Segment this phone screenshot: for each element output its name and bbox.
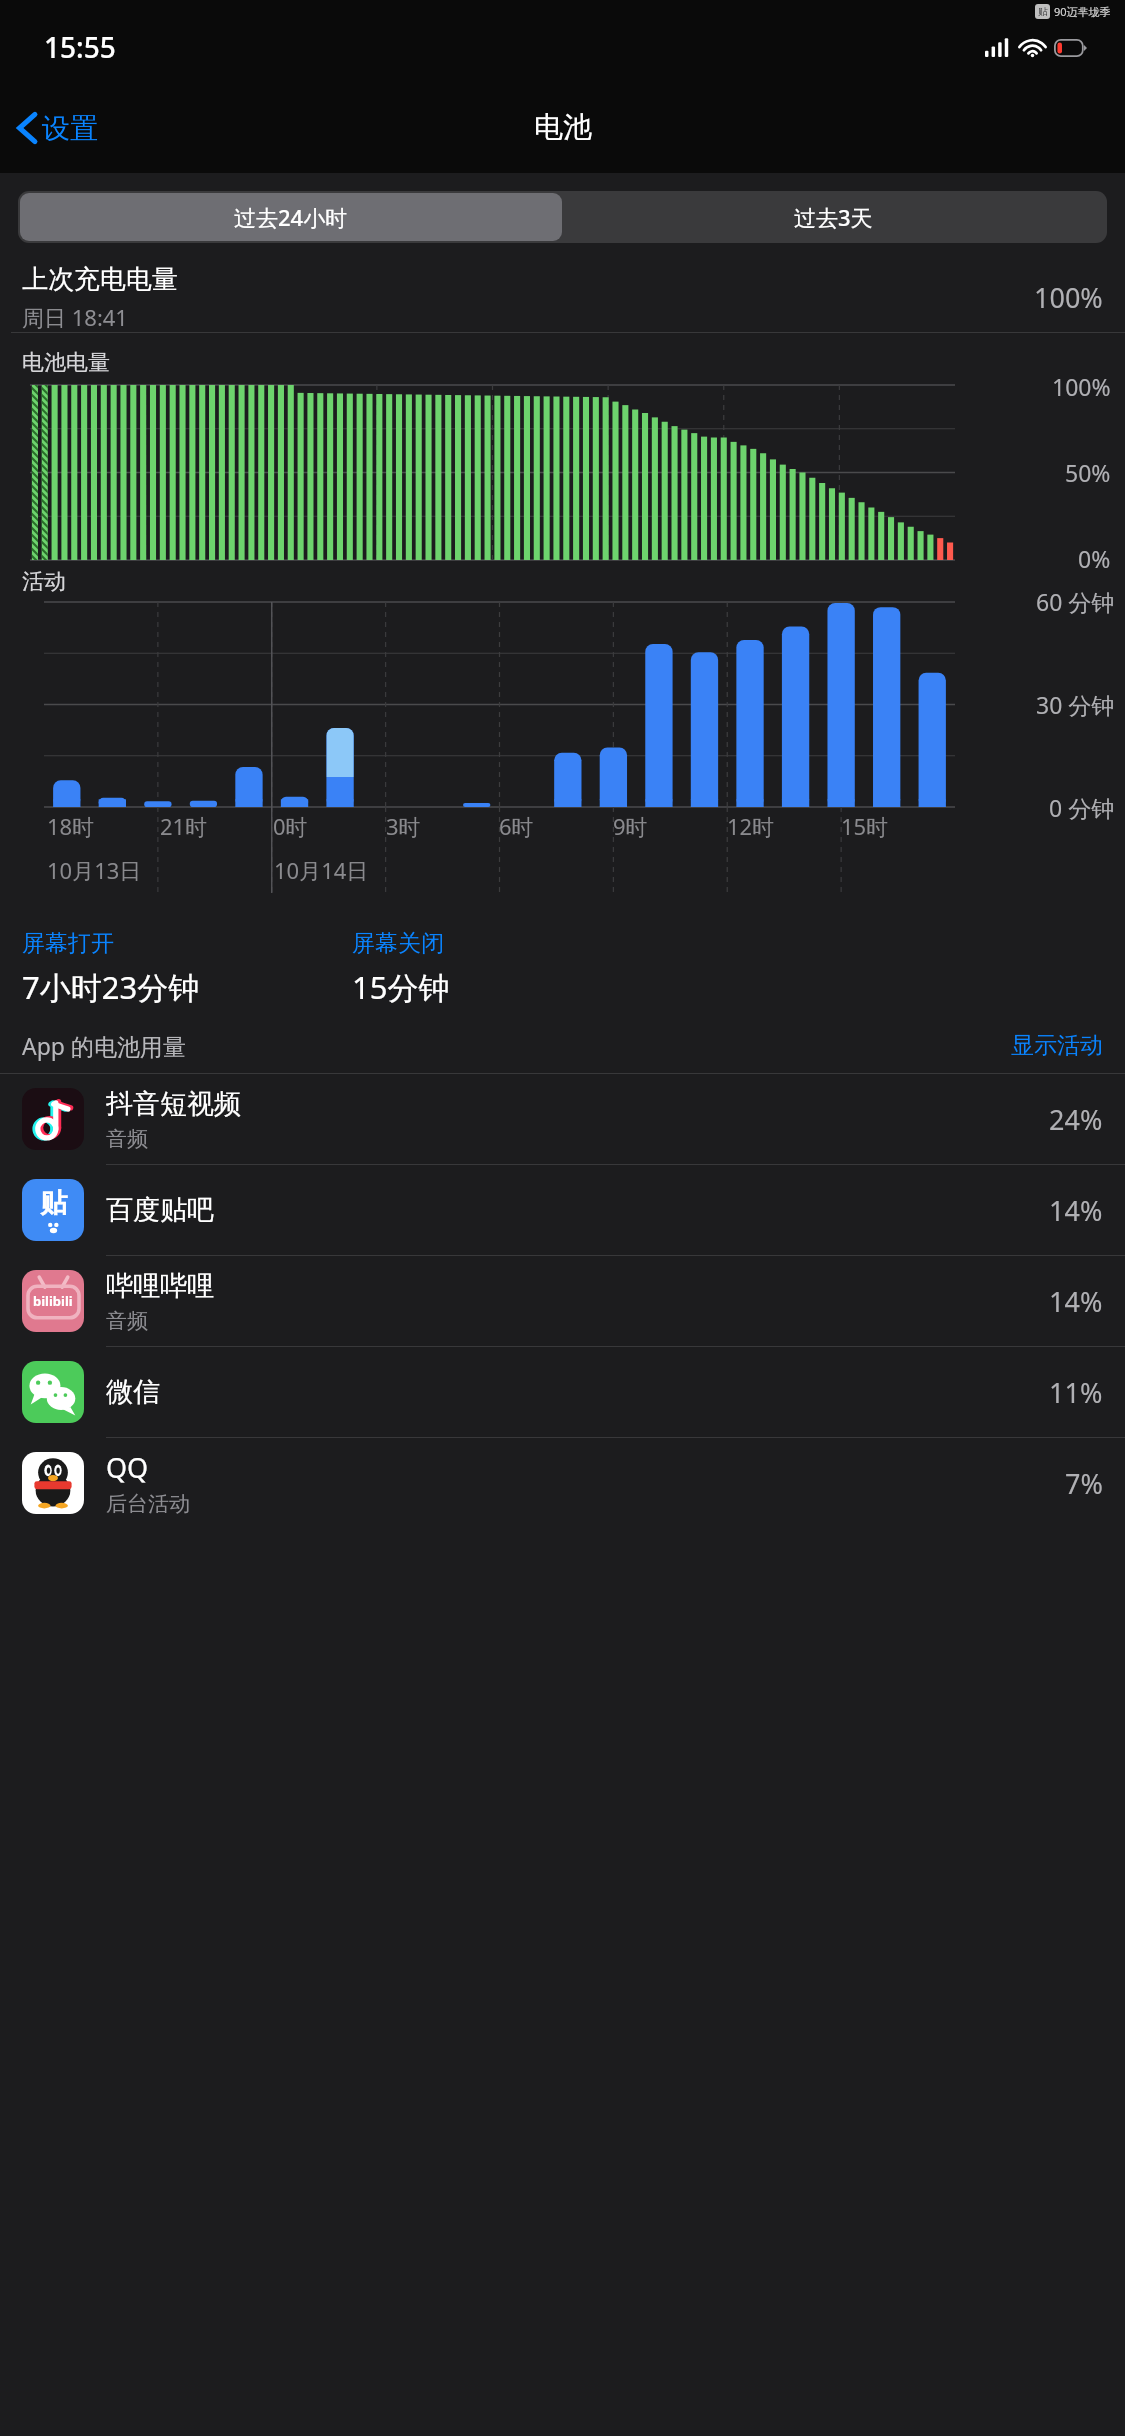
staticText: 电池电量 [22, 349, 110, 377]
staticText: 6时 [499, 811, 534, 841]
button[interactable]: 过去24小时 [20, 193, 562, 241]
staticText: 12时 [727, 811, 775, 841]
staticText: 电池 [534, 109, 592, 146]
staticText: 屏幕打开 [22, 929, 114, 958]
staticText: 100% [1034, 279, 1103, 316]
staticText: 活动 [22, 568, 66, 596]
staticText: 21时 [160, 811, 208, 841]
staticText: 贴 [1038, 5, 1048, 18]
staticText: 9时 [613, 811, 648, 841]
staticText: 百度贴吧 [106, 1193, 214, 1227]
staticText: 贴 [40, 1186, 67, 1220]
staticText: 设置 [42, 111, 98, 146]
staticText: 过去24小时 [234, 202, 348, 232]
button[interactable]: 设置 [0, 104, 110, 152]
staticText: 0时 [273, 811, 308, 841]
staticText: 屏幕关闭 [352, 929, 444, 958]
staticText: 10月13日 [47, 855, 142, 885]
staticText: 18时 [47, 811, 95, 841]
staticText: 60 分钟 [1036, 586, 1115, 617]
staticText: 上次充电电量 [22, 263, 178, 296]
staticText: QQ [106, 1449, 149, 1486]
staticText: 抖音短视频 [106, 1087, 241, 1121]
staticText: 15:55 [44, 28, 116, 66]
staticText: 后台活动 [106, 1491, 190, 1517]
staticText: 显示活动 [1011, 1031, 1103, 1060]
button[interactable]: 微信 [0, 1347, 1125, 1438]
staticText: 10月14日 [274, 855, 369, 885]
staticText: 哔哩哔哩 [106, 1269, 214, 1303]
button[interactable]: 显示活动 [1011, 1031, 1103, 1060]
staticText: App 的电池用量 [22, 1030, 1011, 1061]
staticText: 音频 [106, 1308, 148, 1334]
button[interactable]: 抖音短视频 [0, 1074, 1125, 1165]
staticText: 0% [1078, 543, 1111, 574]
staticText: 0 分钟 [1049, 792, 1115, 823]
staticText: 3时 [386, 811, 421, 841]
staticText: 音频 [106, 1126, 148, 1152]
button[interactable]: 过去3天 [562, 193, 1105, 241]
staticText: 11% [1049, 1374, 1103, 1411]
staticText: 14% [1049, 1192, 1103, 1229]
button[interactable]: QQ [0, 1438, 1125, 1528]
staticText: 24% [1049, 1101, 1103, 1138]
staticText: 50% [1065, 457, 1111, 488]
staticText: 7小时23分钟 [22, 966, 200, 1008]
staticText: 15时 [841, 811, 889, 841]
staticText: 微信 [106, 1375, 160, 1409]
staticText: 7% [1065, 1465, 1103, 1502]
staticText: 90迈芈垅季 [1054, 4, 1111, 19]
staticText: 100% [1052, 371, 1111, 402]
staticText: 周日 18:41 [22, 302, 128, 332]
button[interactable]: bilibili [0, 1256, 1125, 1347]
staticText: 30 分钟 [1036, 689, 1115, 720]
staticText: 过去3天 [794, 202, 873, 232]
button[interactable]: 贴 [0, 1165, 1125, 1256]
staticText: 14% [1049, 1283, 1103, 1320]
staticText: bilibili [33, 1292, 73, 1310]
staticText: 15分钟 [352, 966, 450, 1008]
